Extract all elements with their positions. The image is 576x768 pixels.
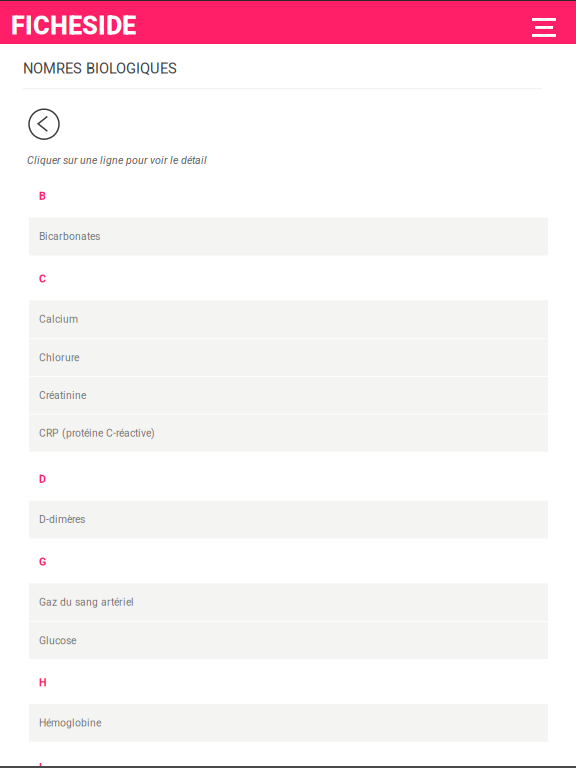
button[interactable]: Glucose xyxy=(29,621,548,659)
staticText: Chlorure xyxy=(39,352,79,364)
staticText: Créatinine xyxy=(39,389,86,401)
staticText: I xyxy=(39,761,42,768)
button[interactable]: Gaz du sang artériel xyxy=(29,583,548,621)
button[interactable]: Hémoglobine xyxy=(29,704,548,742)
staticText: H xyxy=(39,676,47,689)
staticText: B xyxy=(39,190,46,202)
button[interactable]: D-dimères xyxy=(29,501,548,538)
staticText: Glucose xyxy=(39,635,76,647)
button[interactable]: Calcium xyxy=(29,300,548,338)
button[interactable]: Back xyxy=(29,109,59,139)
staticText: Hémoglobine xyxy=(39,717,101,729)
staticText: NOMRES BIOLOGIQUES xyxy=(23,60,177,77)
button[interactable]: Chlorure xyxy=(29,338,548,376)
staticText: Calcium xyxy=(39,313,78,325)
button[interactable]: Menu xyxy=(532,1,576,44)
staticText: Cliquer sur une ligne pour voir le détai… xyxy=(27,154,207,167)
staticText: Bicarbonates xyxy=(39,230,100,243)
button[interactable]: CRP (protéine C-réactive) xyxy=(29,414,548,452)
staticText: G xyxy=(39,556,46,568)
button[interactable]: Créatinine xyxy=(29,376,548,414)
staticText: D xyxy=(39,473,46,485)
staticText: C xyxy=(39,273,46,285)
staticText: D-dimères xyxy=(39,513,85,526)
button[interactable]: FICHESIDE xyxy=(0,1,136,44)
button[interactable]: Bicarbonates xyxy=(29,218,548,255)
staticText: Gaz du sang artériel xyxy=(39,596,134,608)
staticText: FICHESIDE xyxy=(11,11,136,41)
staticText: CRP (protéine C-réactive) xyxy=(39,427,155,439)
